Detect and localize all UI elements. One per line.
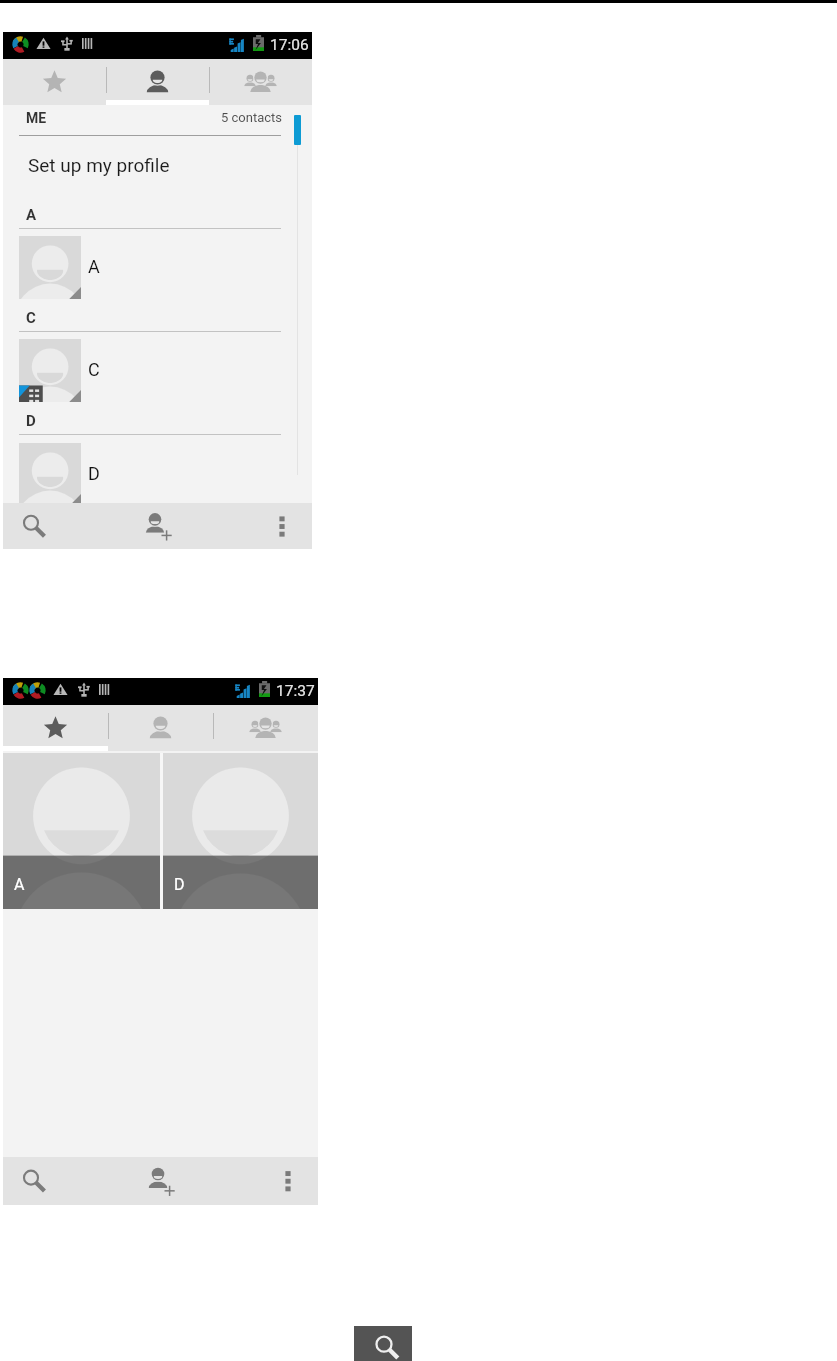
button[interactable]: Search	[12, 1157, 56, 1205]
staticText: 5 contacts	[221, 110, 283, 125]
staticText: D	[88, 463, 100, 484]
staticText: A	[26, 206, 37, 224]
button[interactable]: Favourites	[3, 59, 106, 105]
staticText: 17:37	[276, 682, 315, 700]
staticText: D	[26, 412, 36, 430]
staticText: C	[88, 359, 100, 380]
button[interactable]: Add contact	[132, 503, 184, 549]
button[interactable]: C	[3, 339, 312, 402]
staticText: C	[26, 309, 36, 327]
button[interactable]: Contacts	[108, 705, 213, 751]
button[interactable]: A	[3, 753, 160, 909]
button[interactable]: More options	[260, 503, 304, 549]
button[interactable]: Search	[354, 1326, 412, 1361]
button[interactable]: ME	[26, 110, 47, 126]
staticText: A	[14, 875, 25, 894]
staticText: D	[174, 875, 185, 894]
staticText: 17:06	[270, 36, 309, 54]
button[interactable]: Groups	[209, 59, 312, 105]
button[interactable]: Favourites	[3, 705, 108, 751]
staticText: Set up my profile	[28, 154, 170, 176]
button[interactable]: D	[163, 753, 318, 909]
button[interactable]: Groups	[213, 705, 318, 751]
button[interactable]: Add contact	[135, 1157, 187, 1205]
button[interactable]: Contacts	[106, 59, 209, 105]
staticText: A	[88, 256, 100, 277]
button[interactable]: Search	[12, 503, 56, 549]
button[interactable]: D	[3, 443, 312, 503]
button[interactable]: A	[3, 236, 312, 299]
button[interactable]: More options	[266, 1157, 310, 1205]
button[interactable]: Set up my profile	[3, 146, 312, 188]
